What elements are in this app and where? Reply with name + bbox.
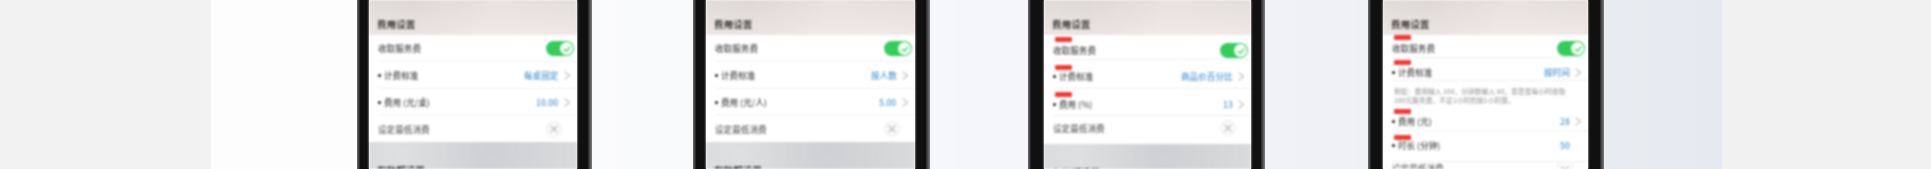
button[interactable]: 设定最低消费 xyxy=(1044,116,1251,144)
staticText: 费用设置 xyxy=(714,17,753,31)
staticText: 收取服务费 xyxy=(1053,44,1096,56)
button[interactable]: 设定最低消费 xyxy=(1383,162,1588,169)
staticText: 13 xyxy=(1223,98,1233,110)
button[interactable]: Clear minimum spend xyxy=(1557,162,1573,169)
button[interactable]: 时长 (分钟) xyxy=(1383,131,1588,161)
button[interactable]: Toggle charge service fee xyxy=(1557,41,1585,56)
staticText: 计费标准 xyxy=(1398,66,1433,78)
staticText: 计费标准 xyxy=(1059,70,1094,82)
staticText: 每桌固定 xyxy=(524,69,559,81)
staticText: 商品价百分比 xyxy=(1181,70,1233,82)
staticText: 费用 (元/人) xyxy=(721,96,767,108)
staticText: 收取服务费 xyxy=(1392,42,1435,54)
staticText: 设定最低消费 xyxy=(378,123,430,135)
button[interactable]: Toggle charge service fee xyxy=(1220,43,1248,58)
button[interactable]: 费用 (%) xyxy=(1044,89,1251,115)
button[interactable]: 收取服务费 xyxy=(1383,35,1588,57)
button[interactable]: 费用 (元/桌) xyxy=(369,89,577,114)
staticText: 费用设置 xyxy=(377,17,416,31)
staticText: 时长 (分钟) xyxy=(1398,139,1441,151)
staticText: 有效期设置 xyxy=(1052,165,1100,169)
button[interactable]: 收取服务费 xyxy=(1044,35,1251,59)
staticText: 收取服务费 xyxy=(378,42,421,54)
button[interactable]: Toggle charge service fee xyxy=(546,41,574,56)
staticText: 5.00 xyxy=(879,96,897,108)
button[interactable]: 计费标准 xyxy=(369,62,577,88)
staticText: 有效期设置 xyxy=(714,163,762,169)
staticText: 费用设置 xyxy=(1391,17,1430,31)
button[interactable]: 收取服务费 xyxy=(369,35,577,61)
staticText: 费用 (%) xyxy=(1059,98,1093,110)
button[interactable]: Clear minimum spend xyxy=(1220,120,1236,136)
button[interactable]: Toggle charge service fee xyxy=(884,41,912,56)
staticText: 设定最低消费 xyxy=(1392,162,1444,169)
button[interactable]: 费用 (元) xyxy=(1383,107,1588,130)
button[interactable]: 设定最低消费 xyxy=(706,115,915,142)
button[interactable]: Clear minimum spend xyxy=(884,121,900,137)
button[interactable]: 计费标准 xyxy=(1383,58,1588,80)
button[interactable]: 设定最低消费 xyxy=(369,115,577,142)
staticText: 费用设置 xyxy=(1052,17,1091,31)
button[interactable]: 费用 (元/人) xyxy=(706,89,915,114)
staticText: 28 xyxy=(1560,115,1570,127)
staticText: 按人数 xyxy=(871,69,897,81)
staticText: 计费标准 xyxy=(384,69,419,81)
staticText: 例如：费用输入 100，分钟数输入 60，意思是每小时收取100元服务费，不足1… xyxy=(1394,86,1575,105)
staticText: 有效期设置 xyxy=(377,163,425,169)
button[interactable]: 收取服务费 xyxy=(706,35,915,61)
staticText: 费用 (元/桌) xyxy=(384,96,430,108)
staticText: 10.00 xyxy=(536,96,559,108)
button[interactable]: Clear minimum spend xyxy=(546,121,562,137)
staticText: 设定最低消费 xyxy=(715,123,767,135)
staticText: 按时间 xyxy=(1544,66,1570,78)
staticText: 设定最低消费 xyxy=(1053,122,1105,134)
staticText: 50 xyxy=(1560,139,1570,151)
button[interactable]: 计费标准 xyxy=(1044,60,1251,88)
button[interactable]: 计费标准 xyxy=(706,62,915,88)
staticText: 计费标准 xyxy=(721,69,756,81)
staticText: 收取服务费 xyxy=(715,42,758,54)
staticText: 费用 (元) xyxy=(1398,115,1432,127)
